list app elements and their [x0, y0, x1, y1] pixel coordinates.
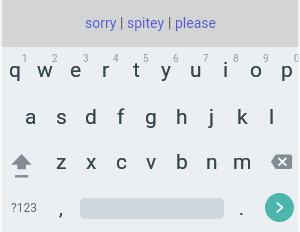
staticText: sorry — [85, 15, 117, 31]
staticText: 2 — [52, 53, 58, 65]
staticText: u — [190, 58, 202, 83]
staticText: i — [223, 58, 229, 83]
staticText: v — [146, 150, 157, 175]
staticText: , — [59, 197, 63, 219]
staticText: t — [133, 58, 140, 83]
staticText: w — [37, 58, 53, 83]
staticText: v — [146, 150, 157, 175]
staticText: y — [161, 58, 171, 83]
staticText: 3 — [83, 53, 89, 65]
staticText: t — [133, 58, 140, 83]
staticText: 8 — [233, 53, 239, 65]
staticText: 9 — [263, 53, 269, 65]
staticText: w — [37, 58, 53, 83]
staticText: g — [145, 105, 157, 130]
staticText: f — [117, 105, 125, 130]
staticText: b — [176, 150, 188, 175]
staticText: ?123 — [11, 201, 37, 215]
button[interactable]: y — [151, 50, 181, 90]
button[interactable]: j — [197, 97, 227, 137]
button[interactable]: sorry — [82, 15, 120, 31]
staticText: c — [116, 150, 127, 175]
button[interactable]: n — [197, 142, 227, 182]
staticText: k — [237, 105, 248, 130]
staticText: r — [102, 58, 110, 83]
button[interactable]: q — [0, 50, 30, 90]
button[interactable]: Enter — [265, 193, 294, 222]
staticText: i — [223, 58, 229, 83]
staticText: a — [25, 105, 37, 130]
staticText: h — [176, 105, 188, 130]
staticText: x — [86, 150, 97, 175]
button[interactable]: spitey — [124, 15, 168, 31]
button[interactable]: b — [167, 142, 197, 182]
button[interactable]: e — [61, 50, 91, 90]
staticText: p — [281, 58, 293, 83]
staticText: . — [239, 197, 245, 219]
button[interactable]: i — [211, 50, 241, 90]
staticText: 6 — [173, 53, 179, 65]
staticText: e — [70, 58, 82, 83]
staticText: j — [209, 105, 215, 130]
staticText: f — [117, 105, 125, 130]
staticText: 5 — [143, 53, 149, 65]
staticText: a — [25, 105, 37, 130]
button[interactable]: Shift — [6, 147, 38, 183]
button[interactable]: u — [181, 50, 211, 90]
button[interactable]: t — [121, 50, 151, 90]
button[interactable]: p — [272, 50, 300, 90]
staticText: . — [239, 197, 245, 219]
staticText: , — [59, 197, 63, 219]
staticText: r — [102, 58, 110, 83]
button[interactable]: h — [167, 97, 197, 137]
button[interactable]: m — [227, 142, 257, 182]
staticText: l — [269, 105, 275, 130]
button[interactable]: k — [227, 97, 257, 137]
button[interactable]: g — [136, 97, 166, 137]
staticText: 1 — [22, 53, 28, 65]
staticText: l — [269, 105, 275, 130]
button[interactable]: please — [172, 15, 219, 31]
button[interactable]: f — [106, 97, 136, 137]
staticText: | — [168, 15, 172, 31]
button[interactable]: r — [91, 50, 121, 90]
staticText: k — [237, 105, 248, 130]
button[interactable]: x — [76, 142, 106, 182]
staticText: d — [85, 105, 97, 130]
staticText: spitey — [127, 15, 165, 31]
staticText: | — [120, 15, 124, 31]
staticText: p — [281, 58, 293, 83]
staticText: x — [86, 150, 97, 175]
button[interactable]: w — [30, 50, 60, 90]
staticText: 4 — [113, 53, 119, 65]
button[interactable]: Delete — [266, 146, 298, 178]
button[interactable]: d — [76, 97, 106, 137]
staticText: c — [116, 150, 127, 175]
button[interactable]: c — [106, 142, 136, 182]
button[interactable]: o — [241, 50, 271, 90]
button[interactable]: l — [257, 97, 287, 137]
staticText: 0 — [294, 53, 300, 65]
staticText: d — [85, 105, 97, 130]
button[interactable]: ?123 — [4, 193, 44, 223]
staticText: n — [206, 150, 218, 175]
staticText: y — [161, 58, 171, 83]
staticText: j — [209, 105, 215, 130]
staticText: o — [250, 58, 262, 83]
staticText: q — [9, 58, 21, 83]
staticText: e — [70, 58, 82, 83]
button[interactable]: v — [136, 142, 166, 182]
staticText: s — [56, 105, 67, 130]
staticText: m — [233, 150, 252, 175]
button[interactable]: s — [46, 97, 76, 137]
staticText: please — [175, 15, 216, 31]
staticText: m — [233, 150, 252, 175]
button[interactable]: a — [16, 97, 46, 137]
staticText: 7 — [203, 53, 209, 65]
button[interactable]: , — [46, 188, 76, 228]
button[interactable]: . — [227, 188, 257, 228]
staticText: o — [250, 58, 262, 83]
staticText: u — [190, 58, 202, 83]
button[interactable]: z — [46, 142, 76, 182]
